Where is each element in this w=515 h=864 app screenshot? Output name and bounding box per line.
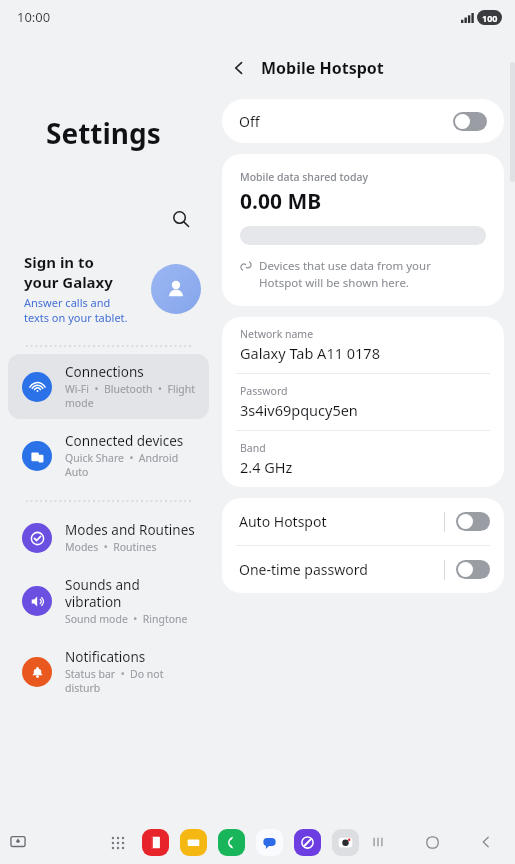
staticText: Sounds and vibration (65, 576, 199, 611)
staticText: Galaxy Tab A11 0178 (240, 343, 380, 363)
button[interactable]: Network name (222, 317, 504, 373)
staticText: 2.4 GHz (240, 457, 293, 477)
button[interactable]: Auto Hotspot (222, 498, 504, 545)
staticText: Band (240, 441, 266, 455)
button[interactable]: Off (222, 99, 504, 143)
button[interactable]: Connected devices (8, 423, 209, 488)
staticText: 10:00 (17, 8, 51, 26)
button[interactable]: Band (222, 431, 504, 487)
staticText: Connected devices (65, 432, 184, 450)
button[interactable]: Home (419, 829, 445, 855)
button[interactable]: One-time password (222, 546, 504, 593)
button[interactable]: Toggle (456, 560, 490, 579)
staticText: Off (239, 112, 260, 131)
staticText: Password (240, 384, 288, 398)
button[interactable]: Notes (142, 829, 169, 856)
staticText: 100 (482, 12, 498, 24)
button[interactable]: Phone (218, 829, 245, 856)
button[interactable]: Modes and Routines (8, 512, 209, 563)
button[interactable]: Apps (105, 830, 131, 856)
staticText: Answer calls and (24, 295, 111, 310)
staticText: Quick Share • Android Auto (65, 451, 199, 479)
button[interactable]: Search (166, 204, 196, 234)
button[interactable]: Connections (8, 354, 209, 419)
button[interactable]: Internet (294, 829, 321, 856)
button[interactable]: Back (473, 829, 499, 855)
button[interactable]: Messages (256, 829, 283, 856)
button[interactable]: Toggle (453, 112, 487, 131)
staticText: Network name (240, 327, 314, 341)
staticText: your Galaxy (24, 272, 113, 292)
staticText: Notifications (65, 648, 146, 666)
staticText: Settings (46, 114, 217, 152)
button[interactable]: Notifications (8, 639, 209, 704)
staticText: texts on your tablet. (24, 310, 128, 325)
staticText: Mobile Hotspot (261, 57, 384, 79)
button[interactable]: Toggle (456, 512, 490, 531)
staticText: Mobile data shared today (240, 170, 368, 184)
staticText: Sound mode • Ringtone (65, 612, 188, 626)
staticText: Connections (65, 363, 144, 381)
button[interactable]: Recent apps panel (4, 828, 32, 856)
staticText: Modes • Routines (65, 540, 157, 554)
button[interactable]: Password (222, 374, 504, 430)
button[interactable]: Recents (365, 829, 391, 855)
staticText: Modes and Routines (65, 521, 195, 539)
staticText: 3s4iv69pqucy5en (240, 400, 358, 420)
button[interactable]: My Files (180, 829, 207, 856)
staticText: Devices that use data from your Hotspot … (259, 258, 431, 290)
button[interactable]: Camera (332, 829, 359, 856)
staticText: Wi-Fi • Bluetooth • Flight mode (65, 382, 199, 410)
staticText: Sign in to (24, 252, 94, 272)
button[interactable]: Sounds and vibration (8, 567, 209, 635)
staticText: One-time password (239, 560, 444, 579)
button[interactable]: Sign in to (0, 248, 217, 329)
button[interactable]: Back (222, 51, 256, 85)
staticText: Auto Hotspot (239, 512, 444, 531)
staticText: Status bar • Do not disturb (65, 667, 199, 695)
staticText: 0.00 MB (240, 187, 322, 216)
